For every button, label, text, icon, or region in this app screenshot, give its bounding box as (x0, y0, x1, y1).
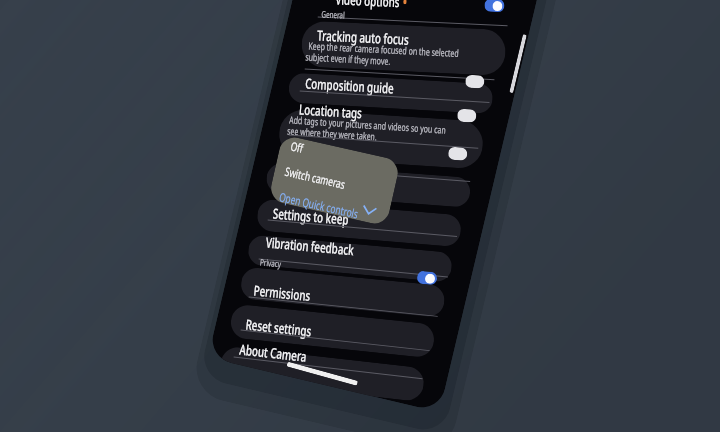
button[interactable]: Vibration feedback (259, 212, 361, 279)
button[interactable]: Composition guide (299, 53, 400, 118)
button[interactable]: Toggle off (462, 70, 488, 93)
staticText: Location tags (293, 85, 368, 137)
staticText: Off (285, 134, 309, 159)
staticText: Keep the rear camera focused on the sele… (303, 0, 496, 102)
button[interactable]: Location tags (293, 85, 368, 137)
button[interactable]: Tracking auto focus (312, 5, 415, 70)
button[interactable]: Toggle off (445, 142, 471, 165)
other: Expand (360, 202, 379, 218)
button[interactable]: Toggle on (413, 266, 441, 290)
staticText: General (318, 2, 348, 26)
button[interactable]: Settings to keep (266, 186, 355, 246)
staticText: Privacy (256, 250, 285, 275)
staticText: Composition guide (299, 53, 400, 118)
staticText: Video options (330, 0, 405, 26)
button[interactable]: Reset settings (239, 299, 319, 356)
staticText: Settings to keep (266, 186, 355, 246)
staticText: About Camera (233, 324, 314, 380)
button[interactable]: Video options (330, 0, 412, 28)
staticText: Open Quick controls (270, 170, 367, 240)
staticText: subject even if they move. (300, 9, 493, 114)
button[interactable]: Permissions (247, 267, 317, 318)
staticText: Tracking auto focus (312, 5, 415, 70)
button[interactable]: About Camera (233, 324, 314, 380)
staticText: Reset settings (239, 299, 319, 356)
button[interactable]: Toggle off (454, 104, 480, 127)
staticText: Switch cameras (277, 149, 354, 206)
staticText: Add tags to your pictures and videos so … (283, 72, 477, 179)
button[interactable]: Toggle on (481, 0, 508, 17)
staticText: Vibration feedback (259, 212, 361, 279)
staticText: Permissions (247, 267, 317, 318)
staticText: see where they were taken. (281, 83, 475, 191)
button[interactable] (247, 105, 421, 256)
